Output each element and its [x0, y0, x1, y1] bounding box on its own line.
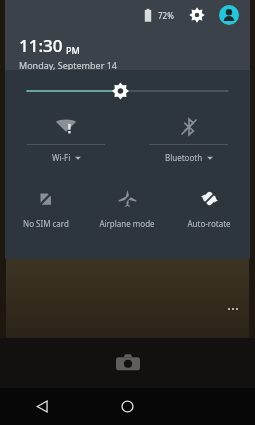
staticText: Auto-rotate: [187, 218, 231, 229]
button[interactable]: Brightness: [5, 70, 250, 112]
button[interactable]: Auto-rotate: [168, 178, 250, 240]
staticText: Monday, September 14: [19, 59, 117, 70]
button[interactable]: Wi-Fi: [5, 112, 127, 178]
button[interactable]: Settings: [186, 4, 208, 26]
staticText: 11:30: [19, 34, 63, 57]
staticText: 72%: [158, 10, 174, 21]
button[interactable]: Home: [85, 388, 170, 425]
button[interactable]: No SIM card: [5, 178, 86, 240]
button[interactable]: Back: [0, 388, 85, 425]
staticText: Airplane mode: [99, 218, 155, 229]
staticText: No SIM card: [23, 218, 69, 229]
staticText: PM: [66, 44, 80, 56]
button[interactable]: Camera: [111, 346, 145, 380]
button[interactable]: Airplane mode: [86, 178, 168, 240]
staticText: Bluetooth: [165, 152, 203, 163]
button[interactable]: User profile: [218, 4, 240, 26]
staticText: Wi-Fi: [52, 152, 71, 163]
button[interactable]: Bluetooth: [127, 112, 250, 178]
